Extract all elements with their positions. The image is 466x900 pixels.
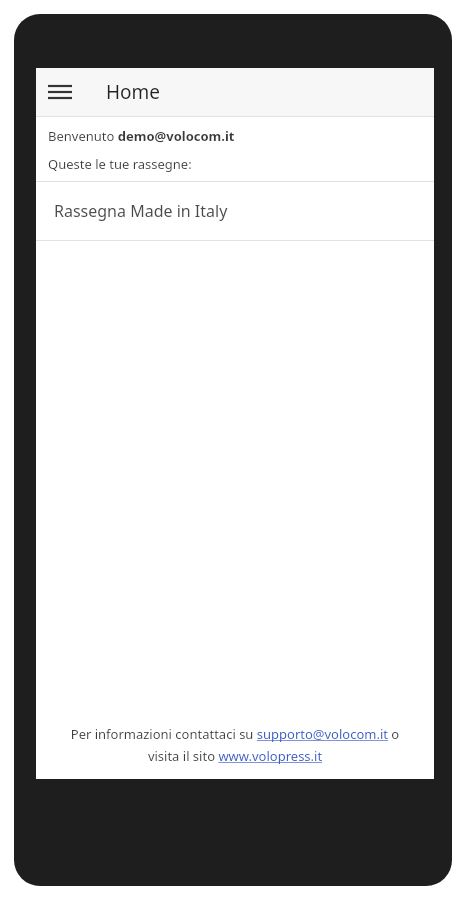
button[interactable]: Rassegna Made in Italy xyxy=(36,182,434,240)
staticText: Rassegna Made in Italy xyxy=(54,200,228,222)
staticText: Queste le tue rassegne: xyxy=(48,155,192,173)
staticText: Per informazioni contattaci su supporto@… xyxy=(46,725,424,743)
button[interactable]: Open navigation menu xyxy=(40,72,80,112)
staticText: Home xyxy=(106,79,161,105)
staticText: Benvenuto demo@volocom.it xyxy=(48,127,235,145)
staticText: visita il sito www.volopress.it xyxy=(46,747,424,765)
